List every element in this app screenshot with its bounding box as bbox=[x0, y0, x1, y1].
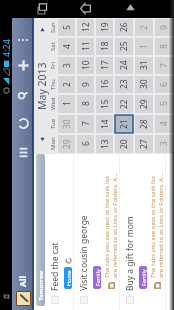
button[interactable]: 18 bbox=[96, 38, 113, 55]
staticText: 2 bbox=[138, 25, 150, 30]
button[interactable]: 14 bbox=[96, 115, 113, 133]
staticText: 16 bbox=[99, 79, 111, 89]
staticText: 4 bbox=[158, 121, 170, 126]
staticText: 10 bbox=[80, 60, 92, 70]
button[interactable]: 2 bbox=[135, 19, 153, 36]
button[interactable]: Complete Feed the cat bbox=[45, 154, 74, 310]
button[interactable]: Complete Buy a gift for mom bbox=[126, 296, 134, 304]
button[interactable]: 21 bbox=[115, 115, 133, 133]
button[interactable]: 9 bbox=[77, 76, 94, 93]
staticText: 24 bbox=[118, 60, 130, 70]
button[interactable]: 24 bbox=[115, 57, 133, 74]
staticText: 8 bbox=[80, 101, 92, 106]
button[interactable]: 4 bbox=[155, 115, 173, 133]
button[interactable]: 7 bbox=[155, 57, 173, 74]
button[interactable]: Refresh bbox=[12, 109, 34, 138]
staticText: Visit cousin george bbox=[78, 215, 90, 291]
staticText: Family bbox=[140, 269, 147, 286]
button[interactable]: 6 bbox=[77, 135, 94, 153]
button[interactable]: 23 bbox=[115, 76, 133, 93]
button[interactable]: 5 bbox=[58, 19, 75, 36]
staticText: 4 bbox=[61, 44, 73, 49]
button[interactable]: Tomorrow bbox=[36, 154, 45, 306]
button[interactable]: Recents bbox=[32, 0, 50, 18]
staticText: 23 bbox=[118, 79, 130, 89]
button[interactable]: Previous month bbox=[35, 133, 49, 147]
staticText: Home bbox=[65, 270, 72, 286]
staticText: 5 bbox=[158, 101, 170, 106]
staticText: 20 bbox=[118, 139, 130, 149]
button[interactable]: Back bbox=[121, 0, 139, 18]
staticText: Mon bbox=[49, 137, 57, 150]
button[interactable]: 27 bbox=[135, 135, 153, 153]
button[interactable]: 16 bbox=[96, 76, 113, 93]
button[interactable]: Complete Buy a gift for mom bbox=[120, 154, 166, 310]
staticText: 15 bbox=[99, 99, 111, 109]
button[interactable]: 29 bbox=[58, 135, 75, 153]
button[interactable]: 6 bbox=[155, 76, 173, 93]
button[interactable]: Home bbox=[76, 0, 94, 18]
button[interactable]: 3 bbox=[58, 57, 75, 74]
button[interactable]: 13 bbox=[96, 135, 113, 153]
staticText: Tue bbox=[49, 118, 57, 129]
button[interactable]: Lists bbox=[12, 138, 34, 167]
staticText: Feed the cat bbox=[49, 242, 61, 291]
staticText: 13 bbox=[99, 139, 111, 149]
button[interactable]: App icon bbox=[17, 292, 30, 305]
button[interactable]: Complete Feed the cat bbox=[51, 296, 59, 304]
staticText: May 2013 bbox=[35, 62, 49, 110]
button[interactable]: 12 bbox=[77, 19, 94, 36]
button[interactable]: 31 bbox=[135, 57, 153, 74]
staticText: Fri bbox=[49, 61, 57, 69]
button[interactable]: 19 bbox=[96, 19, 113, 36]
button[interactable]: 8 bbox=[155, 38, 173, 55]
button[interactable]: 30 bbox=[58, 115, 75, 133]
staticText: 5 bbox=[61, 25, 73, 30]
button[interactable]: 10 bbox=[77, 57, 94, 74]
staticText: 19 bbox=[99, 22, 111, 32]
button[interactable]: 25 bbox=[115, 38, 133, 55]
staticText: 27 bbox=[138, 139, 150, 149]
staticText: 18 bbox=[99, 41, 111, 51]
staticText: 2 bbox=[61, 82, 73, 87]
staticText: 21 bbox=[118, 119, 130, 129]
button[interactable]: 17 bbox=[96, 57, 113, 74]
button[interactable]: 28 bbox=[135, 115, 153, 133]
button[interactable]: Complete Visit cousin george bbox=[74, 154, 120, 310]
button[interactable]: 22 bbox=[115, 95, 133, 113]
button[interactable]: 29 bbox=[135, 95, 153, 113]
button[interactable]: 5 bbox=[155, 95, 173, 113]
button[interactable]: 3 bbox=[155, 135, 173, 153]
staticText: 29 bbox=[138, 99, 150, 109]
button[interactable]: Complete Visit cousin george bbox=[80, 296, 88, 304]
staticText: 22 bbox=[118, 99, 130, 109]
button[interactable]: 15 bbox=[96, 95, 113, 113]
staticText: 29 bbox=[61, 139, 73, 149]
staticText: 25 bbox=[118, 41, 130, 51]
staticText: Thu bbox=[49, 79, 57, 90]
button[interactable]: 1 bbox=[135, 38, 153, 55]
button[interactable]: More options bbox=[12, 32, 34, 48]
button[interactable]: 30 bbox=[135, 76, 153, 93]
staticText: 3 bbox=[61, 63, 73, 68]
button[interactable]: 8 bbox=[77, 95, 94, 113]
button[interactable]: 2 bbox=[58, 76, 75, 93]
button[interactable]: 1 bbox=[58, 95, 75, 113]
button[interactable]: Search bbox=[12, 80, 34, 109]
staticText: 4:24 bbox=[0, 39, 12, 57]
button[interactable]: 20 bbox=[115, 135, 133, 153]
staticText: Tomorrow bbox=[37, 270, 45, 301]
button[interactable]: Next month bbox=[35, 23, 49, 37]
staticText: 17 bbox=[99, 60, 111, 70]
button[interactable]: 4 bbox=[58, 38, 75, 55]
button[interactable]: Add bbox=[12, 51, 34, 80]
staticText: 8 bbox=[158, 44, 170, 49]
button[interactable]: 9 bbox=[155, 19, 173, 36]
button[interactable]: 7 bbox=[77, 115, 94, 133]
staticText: 12 bbox=[80, 22, 92, 32]
staticText: 7 bbox=[80, 121, 92, 126]
staticText: Buy a gift for mom bbox=[124, 216, 136, 291]
button[interactable]: 26 bbox=[115, 19, 133, 36]
staticText: Family bbox=[94, 269, 101, 286]
button[interactable]: 11 bbox=[77, 38, 94, 55]
